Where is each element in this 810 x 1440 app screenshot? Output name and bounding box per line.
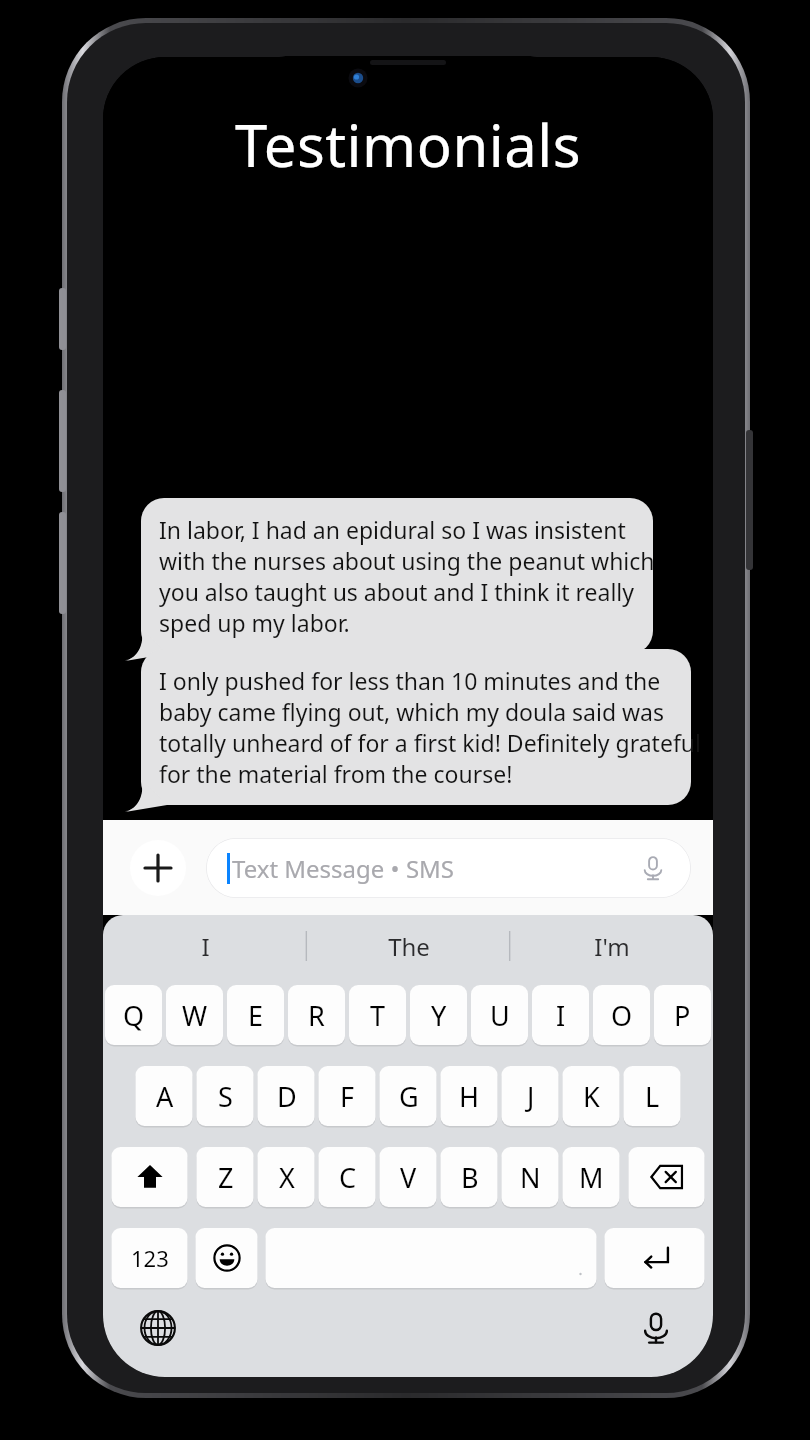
staticText: P: [674, 997, 691, 1034]
staticText: R: [308, 997, 325, 1034]
button[interactable]: Emoji: [196, 1228, 258, 1288]
button[interactable]: D: [258, 1066, 315, 1126]
button[interactable]: C: [319, 1147, 376, 1207]
button[interactable]: U: [471, 985, 528, 1045]
button[interactable]: S: [197, 1066, 254, 1126]
button[interactable]: P: [654, 985, 711, 1045]
button[interactable]: O: [593, 985, 650, 1045]
staticText: H: [459, 1078, 480, 1115]
button[interactable]: M: [563, 1147, 620, 1207]
button[interactable]: Text Message • SMS: [206, 838, 691, 898]
staticText: L: [645, 1078, 660, 1115]
button[interactable]: I only pushed for less than 10 minutes a…: [125, 649, 691, 811]
button[interactable]: K: [563, 1066, 620, 1126]
button[interactable]: Add attachment: [130, 840, 186, 896]
staticText: A: [156, 1078, 174, 1115]
staticText: The: [388, 930, 430, 963]
staticText: with the nurses about using the peanut w…: [159, 545, 655, 576]
staticText: I: [201, 930, 210, 963]
staticText: V: [400, 1159, 417, 1196]
staticText: K: [583, 1078, 600, 1115]
staticText: you also taught us about and I think it …: [159, 576, 634, 607]
staticText: W: [182, 997, 208, 1034]
button[interactable]: Y: [410, 985, 467, 1045]
button[interactable]: A: [136, 1066, 193, 1126]
button[interactable]: E: [227, 985, 284, 1045]
button[interactable]: V: [380, 1147, 437, 1207]
staticText: I: [556, 997, 566, 1034]
button[interactable]: F: [319, 1066, 376, 1126]
staticText: In labor, I had an epidural so I was ins…: [159, 514, 626, 545]
button[interactable]: Dictate: [635, 850, 671, 886]
staticText: Z: [218, 1159, 234, 1196]
staticText: sped up my labor.: [159, 607, 350, 638]
staticText: totally unheard of for a first kid! Defi…: [159, 727, 701, 758]
staticText: G: [399, 1078, 419, 1115]
button[interactable]: B: [441, 1147, 498, 1207]
button[interactable]: W: [166, 985, 223, 1045]
button[interactable]: J: [502, 1066, 559, 1126]
button[interactable]: Backspace: [629, 1147, 705, 1207]
staticText: O: [611, 997, 633, 1034]
staticText: M: [579, 1159, 604, 1196]
button[interactable]: G: [380, 1066, 437, 1126]
button[interactable]: I'm: [510, 915, 713, 977]
button[interactable]: Shift: [112, 1147, 188, 1207]
staticText: 123: [131, 1243, 169, 1273]
button[interactable]: I: [103, 915, 307, 977]
staticText: X: [279, 1159, 295, 1196]
button[interactable]: L: [624, 1066, 681, 1126]
button[interactable]: The: [307, 915, 510, 977]
staticText: I'm: [594, 930, 630, 963]
staticText: T: [370, 997, 386, 1034]
staticText: S: [218, 1078, 233, 1115]
button[interactable]: R: [288, 985, 345, 1045]
button[interactable]: I: [532, 985, 589, 1045]
staticText: N: [520, 1159, 541, 1196]
staticText: U: [490, 997, 510, 1034]
button[interactable]: Q: [105, 985, 162, 1045]
button[interactable]: T: [349, 985, 406, 1045]
button[interactable]: H: [441, 1066, 498, 1126]
staticText: J: [527, 1078, 535, 1115]
button[interactable]: Voice input: [633, 1305, 679, 1351]
staticText: D: [277, 1078, 297, 1115]
staticText: baby came flying out, which my doula sai…: [159, 696, 665, 727]
button[interactable]: Switch keyboard language: [135, 1305, 181, 1351]
button[interactable]: N: [502, 1147, 559, 1207]
staticText: E: [248, 997, 264, 1034]
staticText: for the material from the course!: [159, 758, 513, 789]
button[interactable]: 123: [112, 1228, 188, 1288]
staticText: Testimonials: [235, 105, 581, 184]
button[interactable]: In labor, I had an epidural so I was ins…: [125, 498, 653, 660]
staticText: I only pushed for less than 10 minutes a…: [159, 665, 661, 696]
staticText: Text Message • SMS: [232, 852, 454, 885]
staticText: Q: [123, 997, 145, 1034]
button[interactable]: X: [258, 1147, 315, 1207]
staticText: F: [340, 1078, 355, 1115]
button[interactable]: Return: [605, 1228, 705, 1288]
button[interactable]: Z: [197, 1147, 254, 1207]
staticText: Y: [431, 997, 447, 1034]
staticText: B: [461, 1159, 479, 1196]
staticText: C: [339, 1159, 357, 1196]
